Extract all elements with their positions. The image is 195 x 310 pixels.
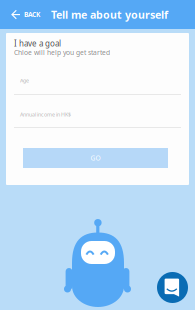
staticText: Tell me about yourself bbox=[51, 7, 168, 22]
staticText: GO bbox=[90, 154, 100, 162]
button[interactable]: BACK bbox=[0, 0, 51, 29]
button[interactable]: GO bbox=[23, 148, 168, 168]
staticText: Chloe will help you get started bbox=[14, 48, 110, 57]
button[interactable]: Open chat bbox=[157, 272, 188, 303]
staticText: BACK bbox=[24, 10, 40, 19]
staticText: I have a goal bbox=[14, 38, 61, 49]
staticText: Annual income in HK$ bbox=[20, 111, 71, 118]
staticText: Age bbox=[20, 77, 29, 84]
